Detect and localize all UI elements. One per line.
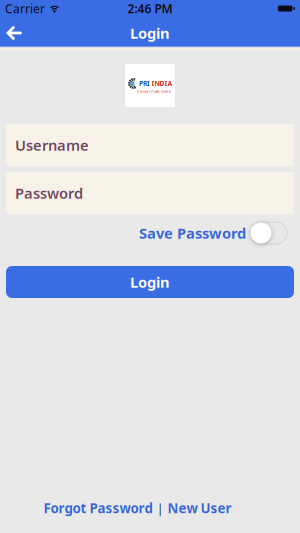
staticText: | <box>156 499 163 517</box>
button[interactable]: Username <box>6 124 294 166</box>
staticText: INDIA <box>151 79 172 88</box>
staticText: PRI <box>139 79 150 88</box>
button[interactable]: New User <box>167 499 231 517</box>
staticText: 2:46 PM <box>127 0 172 16</box>
button[interactable]: Password <box>6 172 294 214</box>
button[interactable]: Forgot Password <box>43 499 152 517</box>
staticText: Login <box>130 23 170 43</box>
staticText: Login <box>130 272 170 292</box>
staticText: IT Services Private Limited <box>137 90 171 93</box>
staticText: Username <box>15 135 89 155</box>
button[interactable]: Back <box>0 20 30 46</box>
staticText: Forgot Password <box>43 499 152 517</box>
staticText: Carrier <box>5 0 45 16</box>
staticText: New User <box>167 499 231 517</box>
button[interactable]: Save Password <box>251 222 287 244</box>
button[interactable]: Login <box>6 266 294 298</box>
staticText: Password <box>15 183 83 203</box>
staticText: Save Password <box>139 223 246 243</box>
